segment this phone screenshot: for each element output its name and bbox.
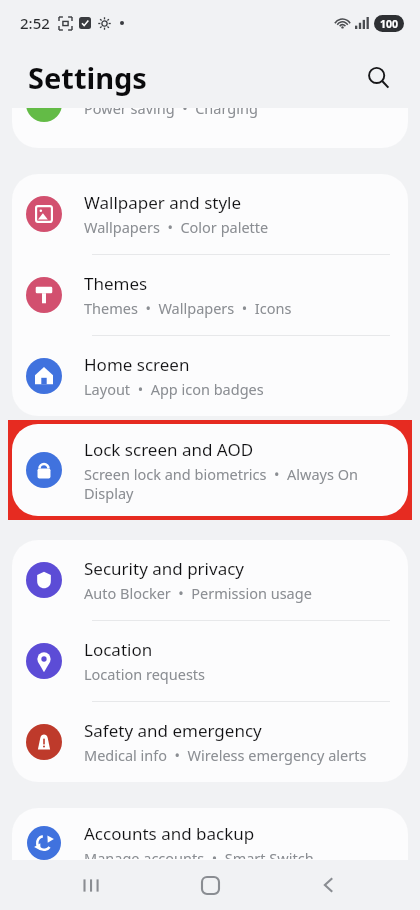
staticText: Themes • Wallpapers • Icons: [84, 298, 292, 318]
button[interactable]: Lock screen and AOD: [12, 424, 408, 516]
button[interactable]: Themes: [12, 255, 408, 336]
button[interactable]: Accounts and backup: [12, 808, 408, 860]
button[interactable]: Wallpaper and style: [12, 174, 408, 255]
staticText: 100: [380, 17, 399, 31]
staticText: Manage accounts • Smart Switch: [84, 848, 314, 859]
staticText: Lock screen and AOD: [84, 438, 254, 461]
staticText: Location: [84, 638, 153, 661]
staticText: Screen lock and biometrics • Always On D…: [84, 464, 394, 503]
button[interactable]: Power saving • Charging: [12, 108, 408, 148]
staticText: Layout • App icon badges: [84, 379, 264, 399]
staticText: 2:52: [20, 13, 50, 33]
staticText: Wallpaper and style: [84, 191, 242, 214]
staticText: Location requests: [84, 664, 206, 684]
staticText: Medical info • Wireless emergency alerts: [84, 745, 367, 765]
button[interactable]: Recent apps: [63, 860, 119, 910]
staticText: Power saving • Charging: [84, 108, 258, 118]
button[interactable]: Location: [12, 621, 408, 702]
staticText: Settings: [28, 58, 147, 97]
staticText: Safety and emergency: [84, 719, 262, 742]
staticText: Security and privacy: [84, 557, 245, 580]
staticText: Themes: [84, 272, 148, 295]
staticText: Auto Blocker • Permission usage: [84, 583, 312, 603]
button[interactable]: Search: [358, 57, 398, 97]
button[interactable]: Security and privacy: [12, 540, 408, 621]
button[interactable]: Safety and emergency: [12, 702, 408, 782]
button[interactable]: Home: [182, 860, 238, 910]
staticText: Accounts and backup: [84, 822, 255, 845]
staticText: Wallpapers • Color palette: [84, 217, 269, 237]
staticText: Home screen: [84, 353, 190, 376]
button[interactable]: Home screen: [12, 336, 408, 416]
button[interactable]: Back: [301, 860, 357, 910]
